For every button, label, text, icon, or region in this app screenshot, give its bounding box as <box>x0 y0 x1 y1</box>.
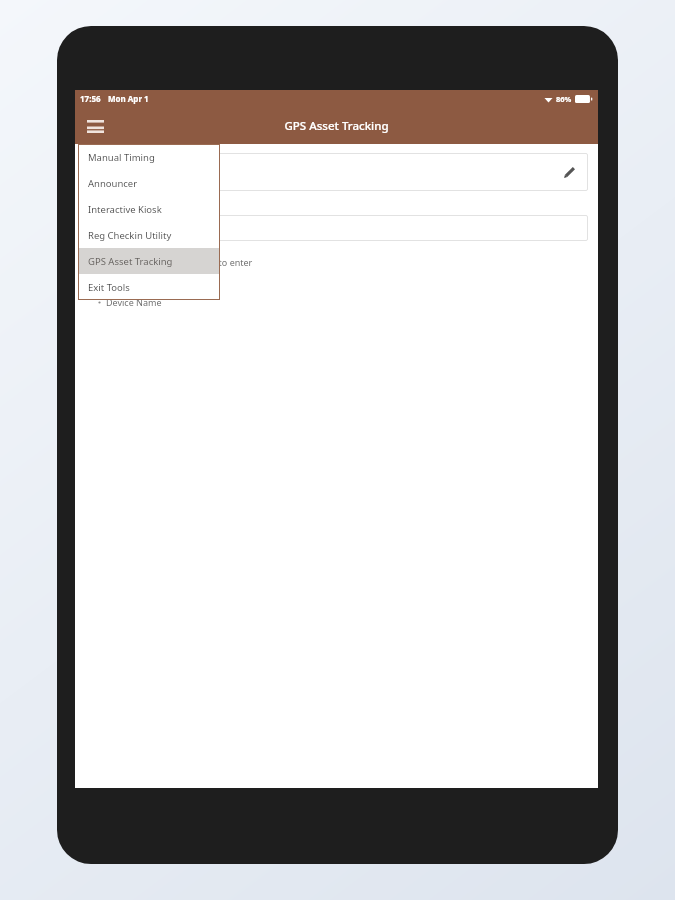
staticText: 86% <box>556 94 572 104</box>
button[interactable]: Edit <box>560 162 580 182</box>
button[interactable]: Reg Checkin Utility <box>78 222 220 248</box>
staticText: Please enter the data you need to enter <box>85 256 253 268</box>
button[interactable]: Interactive Kiosk <box>78 196 220 222</box>
button[interactable]: Edit <box>85 153 588 191</box>
button[interactable]: Manual Timing <box>78 144 220 170</box>
staticText: GPS Asset Tracking <box>88 255 173 268</box>
button[interactable]: Announcer <box>78 170 220 196</box>
staticText: Manual Timing <box>88 151 155 164</box>
staticText: Announcer <box>88 177 138 190</box>
staticText: GPS Asset Tracking <box>284 118 389 134</box>
staticText: Reg Checkin Utility <box>88 229 172 242</box>
staticText: Device Name <box>106 296 162 308</box>
button[interactable]: Exit Tools <box>78 274 220 300</box>
button[interactable] <box>85 215 588 241</box>
button[interactable]: Open navigation menu <box>81 112 109 140</box>
button[interactable]: GPS Asset Tracking <box>78 248 220 274</box>
staticText: Exit Tools <box>88 281 130 294</box>
staticText: Layer <box>106 279 130 291</box>
staticText: Interactive Kiosk <box>88 203 162 216</box>
staticText: 17:56 <box>80 93 101 104</box>
staticText: Mon Apr 1 <box>108 93 149 104</box>
